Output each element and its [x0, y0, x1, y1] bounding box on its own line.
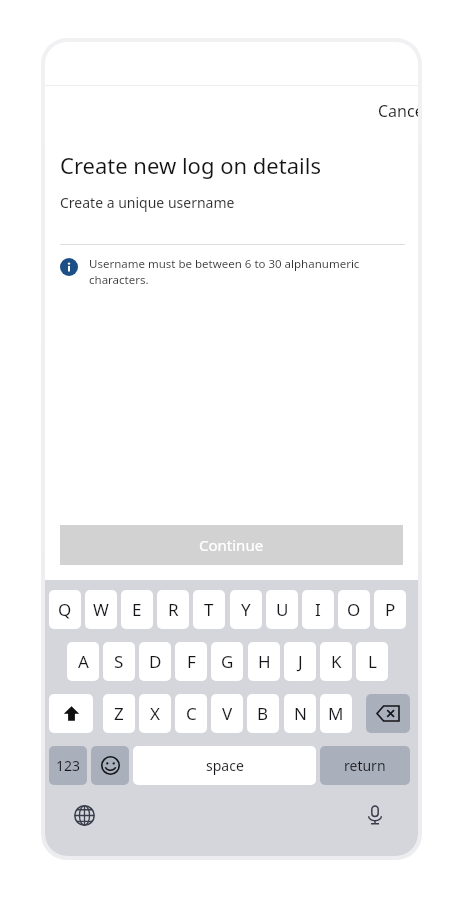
staticText: 123 — [56, 756, 81, 775]
button[interactable]: P — [374, 590, 406, 629]
button[interactable]: O — [338, 590, 370, 629]
staticText: Create a unique username — [60, 193, 235, 212]
staticText: X — [150, 702, 160, 725]
staticText: L — [368, 650, 377, 673]
staticText: G — [221, 650, 234, 673]
button[interactable]: D — [139, 642, 171, 681]
button[interactable]: 123 — [49, 746, 87, 785]
button[interactable]: R — [157, 590, 189, 629]
staticText: J — [298, 650, 303, 673]
button[interactable]: I — [302, 590, 334, 629]
staticText: Continue — [199, 535, 264, 555]
button[interactable]: U — [266, 590, 298, 629]
staticText: Cancel — [378, 100, 418, 122]
button[interactable]: Emoji — [91, 746, 129, 785]
button[interactable]: Q — [49, 590, 81, 629]
staticText: Q — [58, 598, 72, 621]
button[interactable]: space — [133, 746, 316, 785]
button[interactable]: Voice input — [358, 798, 392, 832]
staticText: V — [222, 702, 233, 725]
staticText: S — [114, 650, 124, 673]
button[interactable]: return — [320, 746, 410, 785]
staticText: O — [347, 598, 361, 621]
staticText: space — [206, 756, 244, 775]
button[interactable]: C — [175, 694, 207, 733]
button[interactable]: B — [247, 694, 279, 733]
staticText: H — [258, 650, 271, 673]
button[interactable]: F — [175, 642, 207, 681]
staticText: F — [187, 650, 196, 673]
button[interactable]: W — [85, 590, 117, 629]
button[interactable]: X — [139, 694, 171, 733]
button[interactable]: H — [248, 642, 280, 681]
button[interactable]: Shift — [49, 694, 93, 733]
staticText: W — [93, 598, 109, 621]
button[interactable]: Change keyboard — [67, 798, 101, 832]
staticText: Create new log on details — [60, 150, 321, 180]
staticText: R — [168, 598, 179, 621]
staticText: T — [204, 598, 214, 621]
staticText: A — [78, 650, 89, 673]
staticText: P — [385, 598, 396, 621]
staticText: U — [276, 598, 289, 621]
staticText: D — [149, 650, 162, 673]
staticText: B — [257, 702, 269, 725]
button[interactable]: Cancel — [370, 94, 418, 128]
staticText: Username must be between 6 to 30 alphanu… — [89, 256, 408, 287]
staticText: return — [344, 756, 386, 775]
button[interactable]: A — [67, 642, 99, 681]
staticText: K — [331, 650, 342, 673]
button[interactable]: E — [121, 590, 153, 629]
staticText: N — [294, 702, 307, 725]
button[interactable]: K — [320, 642, 352, 681]
button[interactable]: J — [284, 642, 316, 681]
staticText: C — [186, 702, 197, 725]
button[interactable]: T — [193, 590, 225, 629]
button[interactable]: Y — [230, 590, 262, 629]
staticText: M — [328, 702, 344, 725]
button[interactable]: Continue — [60, 525, 403, 565]
staticText: E — [132, 598, 142, 621]
staticText: Y — [241, 598, 251, 621]
button[interactable]: G — [211, 642, 243, 681]
button[interactable]: Backspace — [366, 694, 410, 733]
staticText: Z — [114, 702, 124, 725]
button[interactable]: L — [356, 642, 388, 681]
button[interactable]: N — [284, 694, 316, 733]
button[interactable]: Z — [103, 694, 135, 733]
button[interactable]: V — [211, 694, 243, 733]
staticText: I — [315, 598, 321, 621]
button[interactable]: M — [320, 694, 352, 733]
button[interactable]: S — [103, 642, 135, 681]
